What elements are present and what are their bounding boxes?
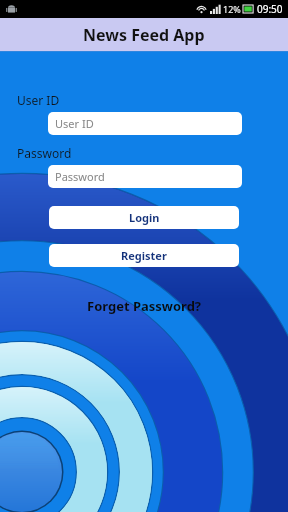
staticText: Login (129, 210, 160, 225)
staticText: Forget Password? (87, 297, 202, 315)
button[interactable]: Forget Password? (0, 297, 288, 315)
staticText: 12% (223, 3, 241, 15)
button[interactable]: Password (48, 165, 242, 188)
staticText: Password (17, 145, 72, 161)
staticText: Register (121, 248, 167, 263)
button[interactable]: User ID (48, 112, 242, 135)
staticText: Password (55, 169, 105, 184)
button[interactable]: Register (49, 244, 239, 267)
staticText: News Feed App (83, 24, 205, 46)
staticText: User ID (17, 92, 60, 108)
staticText: 09:50 (257, 2, 283, 16)
staticText: User ID (55, 116, 94, 131)
button[interactable]: Login (49, 206, 239, 229)
